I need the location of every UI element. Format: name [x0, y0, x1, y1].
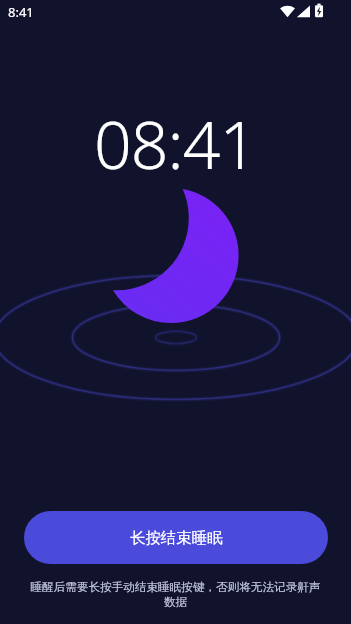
button[interactable]: 长按结束睡眠 — [24, 511, 328, 564]
other: Status icons — [0, 0, 351, 24]
staticText: 8:41 — [8, 3, 34, 21]
staticText: 长按结束睡眠 — [130, 528, 223, 547]
staticText: 08:41 — [94, 98, 257, 188]
staticText: 睡醒后需要长按手动结束睡眠按键，否则将无法记录鼾声数据 — [26, 580, 325, 609]
